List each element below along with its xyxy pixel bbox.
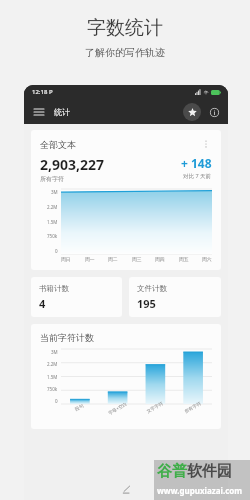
- staticText: 全部文本: [40, 139, 76, 150]
- staticText: 750k: [47, 233, 58, 239]
- staticText: 统计: [54, 107, 70, 117]
- button[interactable]: 当前字符计数: [31, 324, 221, 429]
- staticText: 书籍计数: [39, 284, 69, 293]
- button[interactable]: More options: [200, 138, 212, 150]
- staticText: www.gupuxiazai.com: [157, 485, 243, 496]
- staticText: 195: [137, 296, 156, 310]
- button[interactable]: Edit: [116, 479, 136, 499]
- button[interactable]: Info: [206, 104, 222, 120]
- staticText: 周六: [202, 256, 212, 262]
- staticText: 文字字符: [146, 401, 164, 415]
- staticText: 字母+空白: [107, 400, 128, 416]
- staticText: 1.5M: [47, 374, 58, 380]
- staticText: 周四: [155, 256, 165, 262]
- staticText: 所有字符: [184, 401, 202, 415]
- staticText: 谷普: [157, 462, 187, 481]
- staticText: 周一: [85, 256, 95, 262]
- staticText: 2.2M: [47, 204, 58, 210]
- staticText: 4: [39, 296, 46, 310]
- staticText: 周日: [61, 256, 71, 262]
- staticText: + 148: [181, 155, 212, 171]
- staticText: 2.2M: [47, 361, 58, 367]
- staticText: 1.5M: [47, 219, 58, 225]
- button[interactable]: 文件计数: [129, 277, 221, 317]
- staticText: 段句: [74, 403, 85, 413]
- staticText: 对比 7 天前: [183, 172, 212, 180]
- button[interactable]: Menu: [31, 104, 47, 120]
- staticText: 所有字符: [40, 175, 64, 183]
- staticText: 当前字符计数: [40, 332, 94, 343]
- staticText: 0: [55, 398, 58, 404]
- staticText: 12:18 P: [32, 88, 53, 96]
- staticText: 2,903,227: [40, 155, 105, 174]
- staticText: 周二: [108, 256, 118, 262]
- staticText: 周五: [179, 256, 189, 262]
- staticText: 软件园: [187, 462, 232, 481]
- staticText: 字数统计: [87, 16, 163, 40]
- staticText: 0: [55, 248, 58, 254]
- staticText: 周三: [132, 256, 142, 262]
- button[interactable]: 书籍计数: [31, 277, 122, 317]
- staticText: 3M: [51, 349, 58, 355]
- staticText: 文件计数: [137, 284, 167, 293]
- staticText: 3M: [51, 189, 58, 195]
- button[interactable]: 全部文本: [31, 130, 221, 270]
- button[interactable]: Favorite: [183, 103, 201, 121]
- staticText: 750k: [47, 386, 58, 392]
- staticText: 了解你的写作轨迹: [85, 46, 165, 59]
